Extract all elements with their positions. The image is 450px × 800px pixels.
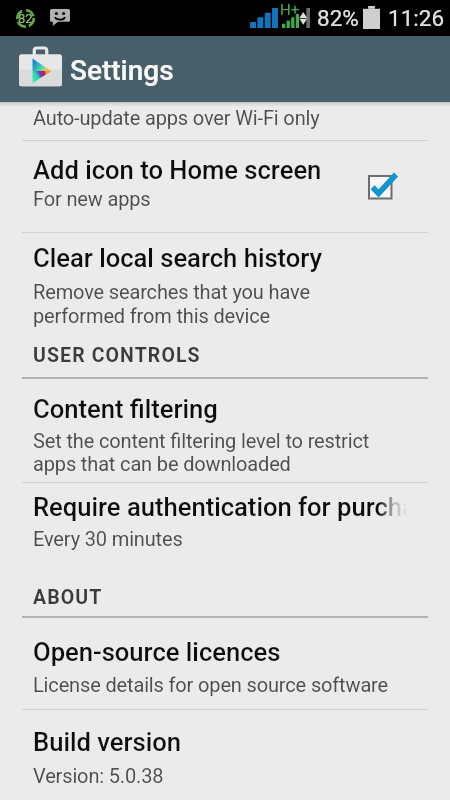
staticText: 82 — [18, 11, 33, 26]
staticText: ABOUT — [33, 586, 103, 609]
button[interactable]: Auto-update apps over Wi-Fi only — [0, 102, 450, 140]
staticText: Settings — [70, 54, 174, 87]
staticText: 82% — [317, 5, 359, 31]
button[interactable]: Add icon to Home screen — [361, 168, 401, 208]
staticText: Every 30 minutes — [33, 527, 183, 550]
staticText: Open-source licences — [33, 637, 281, 667]
button[interactable]: Open-source licences — [0, 617, 450, 709]
staticText: Set the content filtering level to restr… — [33, 429, 370, 452]
staticText: Add icon to Home screen — [33, 155, 322, 185]
staticText: performed from this device — [33, 304, 270, 327]
button[interactable]: Add icon to Home screen — [0, 140, 450, 231]
button[interactable]: Google Play Store — [0, 36, 450, 102]
staticText: apps that can be downloaded — [33, 452, 291, 475]
button[interactable]: Content filtering — [0, 378, 450, 482]
staticText: Auto-update apps over Wi-Fi only — [33, 106, 320, 129]
staticText: Content filtering — [33, 394, 218, 424]
staticText: Clear local search history — [33, 243, 323, 273]
staticText: Build version — [33, 727, 181, 757]
button[interactable]: Build version — [0, 710, 450, 800]
staticText: Remove searches that you have — [33, 280, 310, 303]
staticText: USER CONTROLS — [33, 344, 201, 367]
staticText: For new apps — [33, 187, 151, 210]
other: Google Play Store — [19, 48, 62, 87]
button[interactable]: Require authentication for purchases — [0, 483, 450, 568]
staticText: 11:26 — [388, 5, 445, 31]
button[interactable]: Clear local search history — [0, 232, 450, 344]
staticText: H+ — [280, 1, 300, 19]
staticText: Require authentication for purchases — [33, 492, 450, 522]
staticText: Version: 5.0.38 — [33, 764, 164, 787]
staticText: License details for open source software — [33, 673, 389, 696]
